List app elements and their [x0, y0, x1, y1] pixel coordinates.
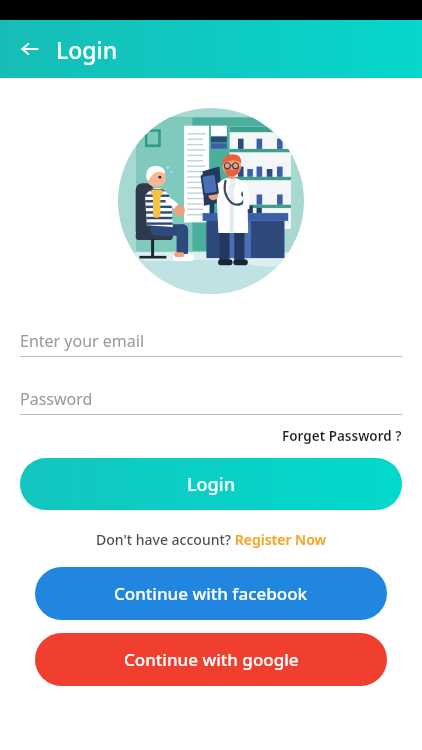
- staticText: Password: [20, 388, 93, 410]
- button[interactable]: Back: [14, 33, 46, 65]
- staticText: Enter your email: [20, 330, 145, 352]
- button[interactable]: Login: [20, 458, 402, 510]
- staticText: Don't have account? Register Now: [96, 530, 327, 549]
- staticText: Continue with google: [124, 648, 299, 671]
- button[interactable]: Continue with google: [35, 633, 387, 686]
- staticText: Forget Password ?: [282, 427, 402, 445]
- button[interactable]: Password: [0, 385, 422, 415]
- button[interactable]: Don't have account? Register Now: [92, 526, 331, 553]
- button[interactable]: Forget Password ?: [262, 425, 422, 447]
- button[interactable]: Enter your email: [0, 327, 422, 357]
- staticText: Login: [187, 472, 235, 497]
- staticText: Continue with facebook: [114, 582, 308, 605]
- button[interactable]: Continue with facebook: [35, 567, 387, 620]
- staticText: Login: [56, 34, 118, 65]
